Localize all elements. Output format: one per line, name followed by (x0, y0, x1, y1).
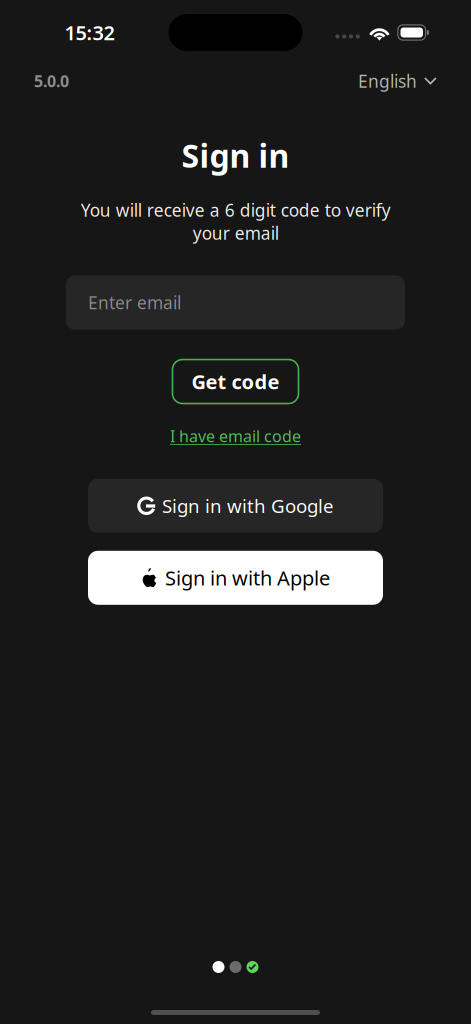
button[interactable]: Step 3, completed (246, 961, 258, 973)
staticText: I have email code (170, 425, 301, 447)
button[interactable]: Enter email (66, 275, 405, 329)
button[interactable]: English (358, 69, 437, 92)
staticText: Sign in with Apple (165, 564, 330, 591)
staticText: 15:32 (64, 19, 114, 46)
button[interactable]: Step 1 (212, 961, 224, 973)
staticText: Get code (191, 368, 279, 395)
staticText: Sign in with Google (162, 493, 334, 518)
button[interactable]: I have email code (170, 425, 301, 447)
staticText: Sign in (181, 134, 289, 176)
staticText: English (358, 69, 417, 92)
button[interactable]: Sign in with Google (88, 479, 383, 533)
button[interactable]: Step 2 (229, 961, 241, 973)
staticText: 5.0.0 (34, 70, 69, 92)
button[interactable]: Get code (172, 359, 298, 403)
staticText: You will receive a 6 digit code to verif… (80, 198, 390, 244)
button[interactable]: Sign in with Apple (88, 551, 383, 605)
staticText: Enter email (88, 291, 181, 314)
